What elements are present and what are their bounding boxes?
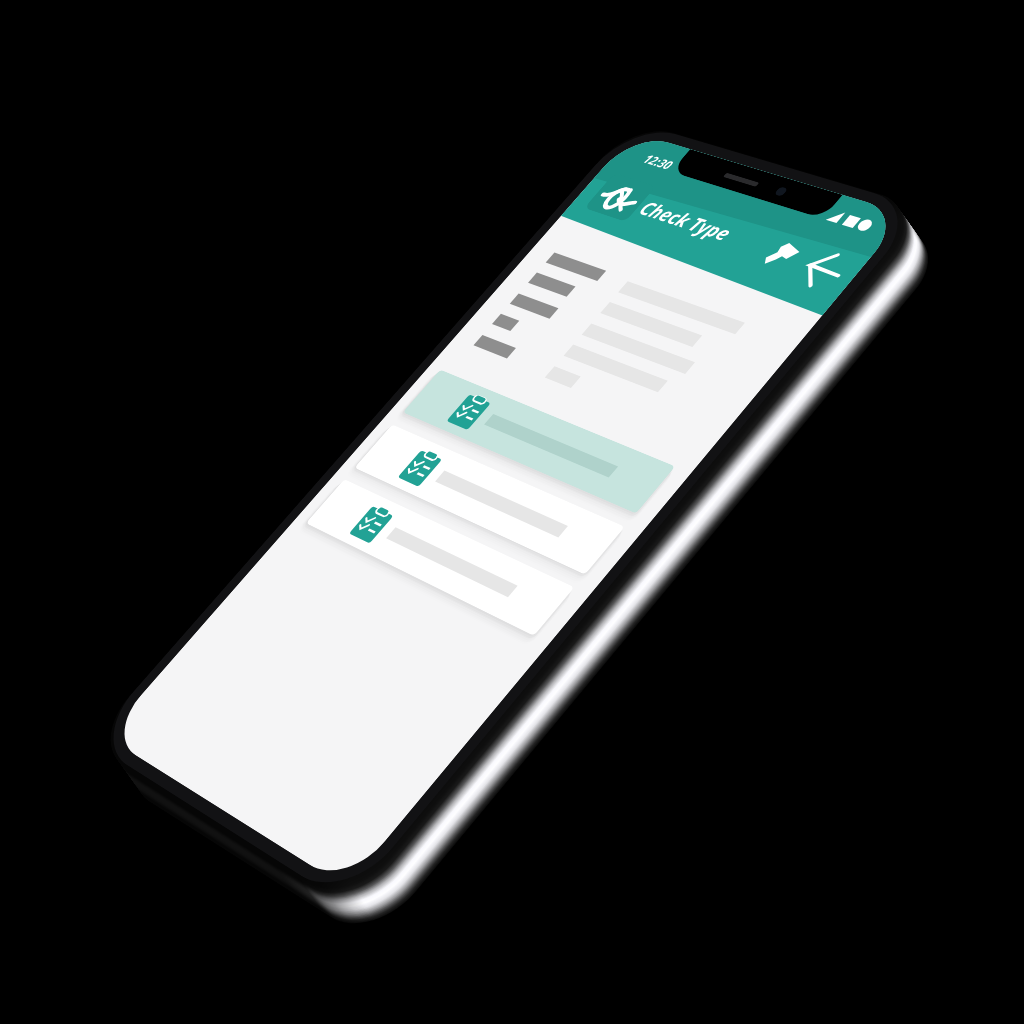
button[interactable] xyxy=(403,369,675,514)
staticText: Check Type xyxy=(634,195,739,246)
staticText: 12:30 xyxy=(640,151,678,173)
button[interactable]: Flashlight xyxy=(750,230,817,278)
button[interactable]: App logo xyxy=(584,173,656,222)
button[interactable] xyxy=(354,424,625,575)
button[interactable] xyxy=(306,479,575,636)
button[interactable]: Back xyxy=(790,246,858,295)
